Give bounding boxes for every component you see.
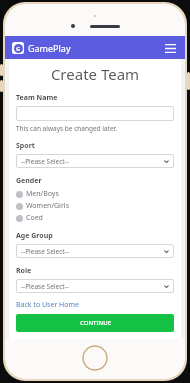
- staticText: CONTINUE: [80, 319, 111, 327]
- button[interactable]: Coed: [16, 213, 43, 223]
- staticText: Gender: [16, 176, 42, 186]
- staticText: Team Name: [16, 93, 58, 103]
- button[interactable]: [16, 106, 174, 121]
- button[interactable]: Menu: [162, 40, 178, 56]
- staticText: Sport: [16, 141, 35, 151]
- staticText: Men/Boys: [26, 189, 59, 199]
- button[interactable]: --Please Select--: [16, 244, 174, 258]
- staticText: G: [16, 45, 21, 53]
- button[interactable]: --Please Select--: [16, 154, 174, 168]
- button[interactable]: G: [12, 42, 71, 54]
- button[interactable]: Men/Boys: [16, 189, 59, 199]
- staticText: Women/Girls: [26, 201, 69, 211]
- staticText: Create Team: [16, 64, 174, 84]
- button[interactable]: --Please Select--: [16, 279, 174, 293]
- staticText: GamePlay: [28, 42, 71, 54]
- button[interactable]: Back to User Home: [16, 300, 80, 310]
- staticText: --Please Select--: [21, 247, 69, 256]
- button[interactable]: CONTINUE: [16, 314, 174, 332]
- staticText: --Please Select--: [21, 282, 69, 291]
- staticText: Coed: [26, 213, 43, 223]
- button[interactable]: Women/Girls: [16, 201, 69, 211]
- staticText: Age Group: [16, 231, 53, 241]
- staticText: This can always be changed later.: [16, 124, 118, 133]
- staticText: --Please Select--: [21, 157, 69, 166]
- staticText: Role: [16, 266, 32, 276]
